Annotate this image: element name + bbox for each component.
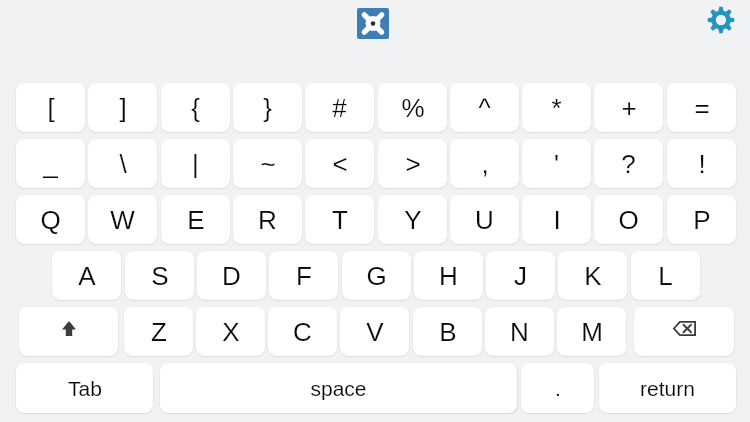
staticText: I [553, 205, 561, 234]
button[interactable]: Backspace [634, 307, 734, 356]
button[interactable]: } [233, 83, 302, 132]
button[interactable]: E [161, 195, 230, 244]
button[interactable]: > [378, 139, 447, 188]
button[interactable]: Q [16, 195, 85, 244]
button[interactable]: L [631, 251, 700, 300]
staticText: | [192, 149, 199, 178]
staticText: Y [404, 205, 422, 234]
staticText: W [110, 205, 135, 234]
staticText: > [405, 149, 421, 178]
button[interactable]: S [125, 251, 194, 300]
button[interactable]: V [340, 307, 409, 356]
staticText: return [640, 377, 695, 400]
button[interactable]: ] [88, 83, 157, 132]
staticText: U [475, 205, 494, 234]
staticText: G [366, 261, 387, 290]
button[interactable]: % [378, 83, 447, 132]
button[interactable]: K [558, 251, 627, 300]
staticText: ' [554, 149, 559, 178]
button[interactable]: R [233, 195, 302, 244]
button[interactable]: ~ [233, 139, 302, 188]
staticText: Z [151, 317, 167, 346]
staticText: D [222, 261, 241, 290]
button[interactable]: + [594, 83, 663, 132]
staticText: H [439, 261, 458, 290]
staticText: # [332, 93, 347, 122]
staticText: C [293, 317, 312, 346]
button[interactable]: P [667, 195, 736, 244]
button[interactable]: < [305, 139, 374, 188]
button[interactable]: Keyboard theme [357, 8, 389, 39]
button[interactable]: Settings [707, 6, 735, 34]
staticText: F [296, 261, 312, 290]
staticText: V [366, 317, 384, 346]
button[interactable]: T [305, 195, 374, 244]
staticText: + [621, 93, 637, 122]
staticText: % [401, 93, 425, 122]
staticText: A [78, 261, 96, 290]
staticText: R [258, 205, 277, 234]
staticText: J [514, 261, 527, 290]
staticText: } [263, 93, 272, 122]
staticText: ^ [478, 93, 491, 122]
button[interactable]: return [599, 363, 736, 413]
staticText: \ [119, 149, 127, 178]
staticText: , [481, 149, 489, 178]
staticText: E [187, 205, 205, 234]
button[interactable]: M [557, 307, 626, 356]
button[interactable]: Y [378, 195, 447, 244]
staticText: N [510, 317, 529, 346]
button[interactable]: * [522, 83, 591, 132]
button[interactable]: C [268, 307, 337, 356]
button[interactable]: A [52, 251, 121, 300]
staticText: S [151, 261, 169, 290]
staticText: [ [47, 93, 55, 122]
staticText: < [332, 149, 348, 178]
button[interactable]: G [342, 251, 411, 300]
staticText: O [618, 205, 639, 234]
staticText: ~ [260, 149, 276, 178]
button[interactable]: \ [88, 139, 157, 188]
staticText: P [693, 205, 711, 234]
button[interactable]: W [88, 195, 157, 244]
staticText: ! [698, 149, 706, 178]
button[interactable]: Shift [19, 307, 118, 356]
button[interactable]: [ [16, 83, 85, 132]
staticText: T [332, 205, 348, 234]
staticText: { [191, 93, 200, 122]
staticText: _ [43, 149, 58, 178]
button[interactable]: Tab [16, 363, 153, 413]
button[interactable]: | [161, 139, 230, 188]
staticText: space [310, 377, 367, 400]
button[interactable]: ^ [450, 83, 519, 132]
button[interactable]: O [594, 195, 663, 244]
button[interactable]: Z [124, 307, 193, 356]
button[interactable]: space [160, 363, 517, 413]
button[interactable]: F [269, 251, 338, 300]
staticText: * [551, 93, 562, 122]
staticText: = [694, 93, 710, 122]
button[interactable]: . [521, 363, 594, 413]
button[interactable]: H [414, 251, 483, 300]
button[interactable]: # [305, 83, 374, 132]
button[interactable]: ' [522, 139, 591, 188]
staticText: K [584, 261, 602, 290]
button[interactable]: U [450, 195, 519, 244]
staticText: Q [40, 205, 61, 234]
staticText: . [555, 377, 561, 400]
button[interactable]: D [197, 251, 266, 300]
staticText: L [658, 261, 673, 290]
button[interactable]: N [485, 307, 554, 356]
button[interactable]: _ [16, 139, 85, 188]
button[interactable]: , [450, 139, 519, 188]
button[interactable]: { [161, 83, 230, 132]
button[interactable]: ? [594, 139, 663, 188]
staticText: ] [119, 93, 127, 122]
button[interactable]: X [196, 307, 265, 356]
button[interactable]: B [413, 307, 482, 356]
button[interactable]: ! [667, 139, 736, 188]
button[interactable]: J [486, 251, 555, 300]
button[interactable]: I [522, 195, 591, 244]
staticText: M [581, 317, 603, 346]
button[interactable]: = [667, 83, 736, 132]
